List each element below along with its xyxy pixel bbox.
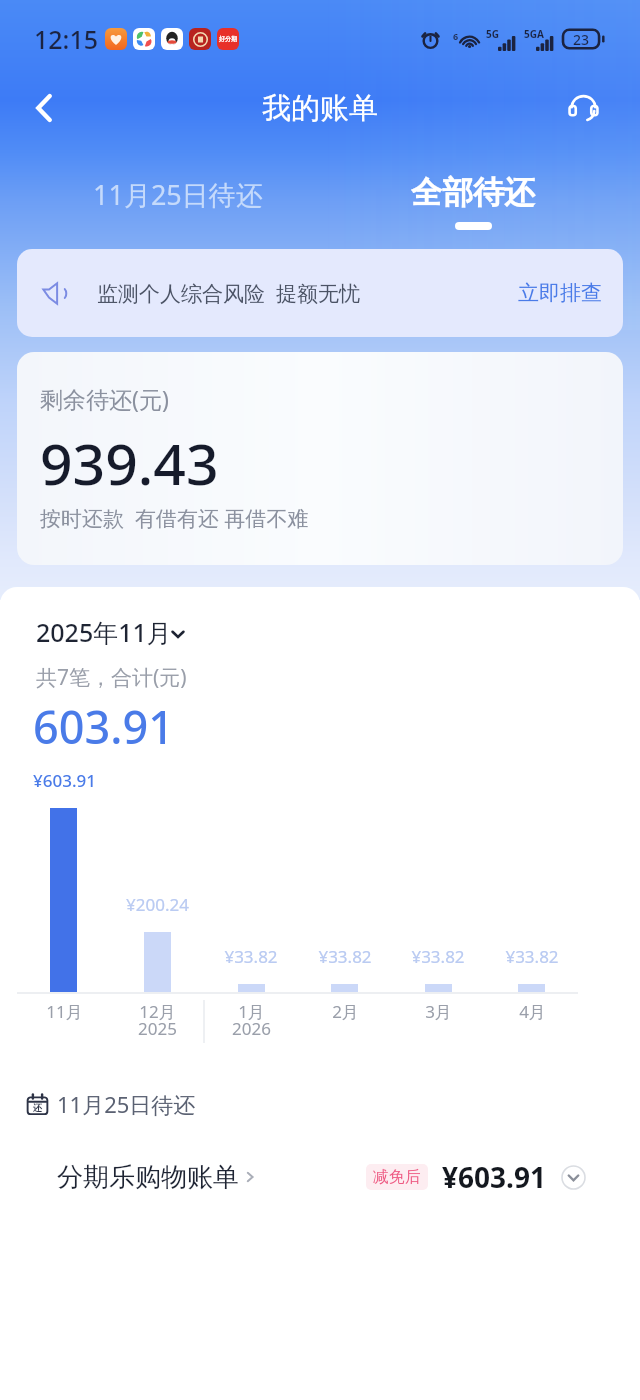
button[interactable]: 监测个人综合风险 提额无忧 <box>17 249 623 337</box>
staticText: 5G <box>486 27 499 41</box>
button[interactable]: 分期乐购物账单 <box>0 1145 640 1209</box>
staticText: 还 <box>33 1102 42 1113</box>
staticText: 剩余待还(元) <box>40 383 169 414</box>
staticText: 立即排查 <box>518 280 602 306</box>
staticText: 我的账单 <box>262 90 378 127</box>
button[interactable]: Back <box>20 84 68 132</box>
staticText: ¥33.82 <box>318 945 372 968</box>
staticText: 603.91 <box>33 696 174 757</box>
staticText: 12月 <box>139 1000 176 1023</box>
button[interactable]: 2025年11月 <box>30 611 194 653</box>
button[interactable]: 11月25日待还 <box>87 170 269 219</box>
staticText: ¥33.82 <box>505 945 559 968</box>
staticText: ¥33.82 <box>224 945 278 968</box>
staticText: 11月 <box>46 1000 83 1023</box>
staticText: 23 <box>573 30 590 49</box>
staticText: ¥200.24 <box>126 893 189 916</box>
staticText: 4月 <box>519 1000 546 1023</box>
staticText: 按时还款 有借有还 再借不难 <box>40 504 309 533</box>
staticText: 1月 <box>238 1000 265 1023</box>
staticText: ¥33.82 <box>411 945 465 968</box>
staticText: 6 <box>453 30 459 42</box>
staticText: ¥603.91 <box>442 1158 546 1196</box>
staticText: 3月 <box>425 1000 452 1023</box>
button[interactable]: Expand <box>560 1164 586 1190</box>
staticText: 2026 <box>232 1017 271 1040</box>
staticText: 2025 <box>138 1017 177 1040</box>
staticText: 5GA <box>524 27 544 41</box>
staticText: 全部待还 <box>411 173 535 212</box>
staticText: 分期乐购物账单 <box>57 1161 239 1194</box>
staticText: 好分期 <box>219 35 237 43</box>
staticText: 11月25日待还 <box>93 176 263 213</box>
staticText: ¥603.91 <box>33 769 96 792</box>
button[interactable]: Customer service <box>562 87 604 129</box>
staticText: 减免后 <box>373 1167 421 1187</box>
staticText: 939.43 <box>40 424 219 502</box>
staticText: 12:15 <box>34 22 99 56</box>
staticText: 11月25日待还 <box>57 1089 196 1119</box>
staticText: 共7笔，合计(元) <box>36 663 187 692</box>
button[interactable]: 全部待还 <box>405 169 541 234</box>
staticText: 2月 <box>332 1000 359 1023</box>
staticText: 2025年11月 <box>36 615 172 649</box>
staticText: 监测个人综合风险 提额无忧 <box>97 279 360 308</box>
